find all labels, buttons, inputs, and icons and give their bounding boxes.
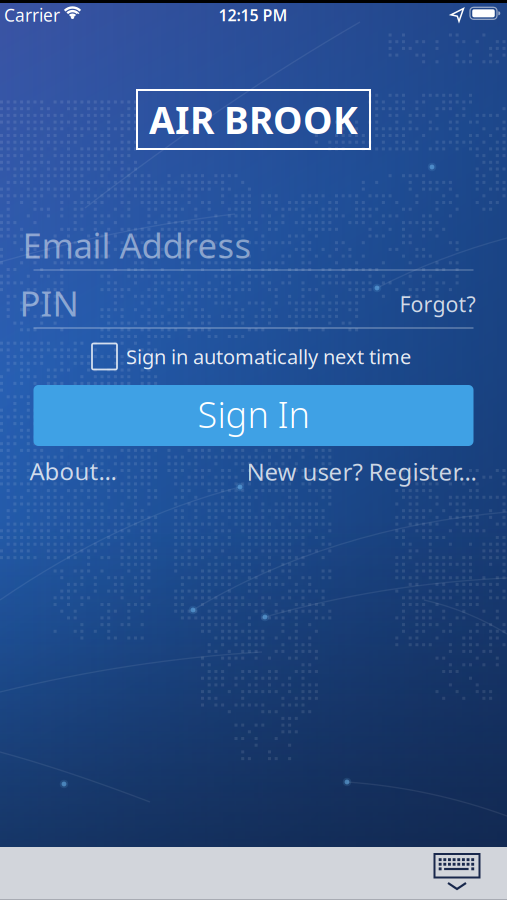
staticText: Carrier	[4, 3, 60, 26]
staticText: About...	[29, 455, 116, 487]
staticText: New user? Register...	[246, 456, 476, 487]
button[interactable]: Forgot?	[399, 290, 475, 318]
staticText: Sign in automatically next time	[126, 343, 411, 370]
staticText: Email Address	[22, 222, 251, 268]
button[interactable]: Dismiss keyboard	[431, 850, 481, 894]
staticText: Sign In	[197, 390, 309, 438]
button[interactable]: New user? Register...	[246, 456, 476, 487]
staticText: Forgot?	[399, 290, 475, 318]
staticText: 12:15 PM	[218, 4, 287, 26]
button[interactable]: Sign In	[33, 385, 473, 446]
staticText: PIN	[19, 280, 78, 326]
button[interactable]: About...	[29, 455, 116, 487]
button[interactable]: Sign in automatically next time	[92, 343, 411, 370]
staticText: AIR BROOK	[149, 95, 358, 144]
